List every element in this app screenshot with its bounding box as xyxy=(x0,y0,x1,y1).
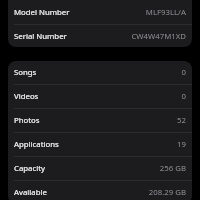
staticText: Songs xyxy=(14,67,37,78)
button[interactable]: Applications xyxy=(8,133,192,156)
staticText: 0 xyxy=(181,91,186,102)
button[interactable]: Songs xyxy=(8,61,192,84)
button[interactable]: Available xyxy=(8,181,192,200)
staticText: Videos xyxy=(14,91,39,102)
staticText: Capacity xyxy=(14,163,46,174)
button[interactable]: Serial Number xyxy=(8,25,192,47)
staticText: 19 xyxy=(177,139,186,150)
staticText: 0 xyxy=(181,67,186,78)
staticText: MLF93LL/A xyxy=(145,7,186,18)
staticText: Photos xyxy=(14,115,40,126)
button[interactable]: Photos xyxy=(8,109,192,132)
staticText: CW4W47M1XD xyxy=(131,31,186,42)
staticText: Serial Number xyxy=(14,31,67,42)
staticText: Model Number xyxy=(14,7,70,18)
button[interactable]: Capacity xyxy=(8,157,192,180)
staticText: Available xyxy=(14,187,47,198)
staticText: 256 GB xyxy=(159,163,186,174)
button[interactable]: Model Number xyxy=(8,1,192,24)
staticText: 208.29 GB xyxy=(148,187,186,198)
staticText: Applications xyxy=(14,139,59,150)
button[interactable]: Videos xyxy=(8,85,192,108)
staticText: 52 xyxy=(177,115,186,126)
